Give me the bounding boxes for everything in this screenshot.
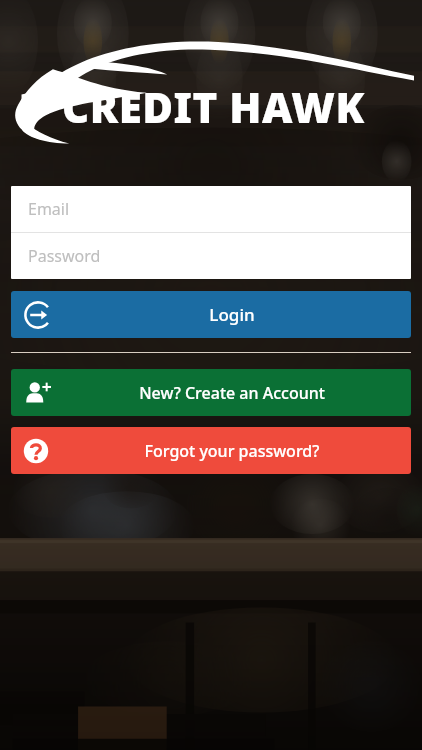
staticText: CREDIT HAWK bbox=[62, 78, 416, 135]
staticText: Forgot your password? bbox=[63, 440, 401, 462]
button[interactable]: Create an account bbox=[11, 369, 411, 416]
staticText: Email bbox=[28, 198, 70, 220]
staticText: Login bbox=[63, 303, 401, 326]
button[interactable]: Login bbox=[11, 291, 411, 338]
button[interactable]: Forgot your password bbox=[11, 427, 411, 474]
button[interactable]: Password bbox=[11, 233, 411, 279]
staticText: New? Create an Account bbox=[63, 382, 401, 404]
button[interactable]: Email bbox=[11, 186, 411, 232]
staticText: Password bbox=[28, 245, 101, 267]
